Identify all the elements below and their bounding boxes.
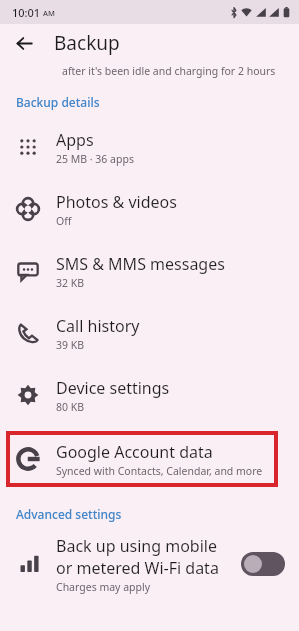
- button[interactable]: Back up using mobile or metered Wi-Fi da…: [241, 552, 285, 576]
- staticText: Advanced settings: [16, 506, 122, 522]
- staticText: or metered Wi-Fi data: [56, 557, 219, 579]
- staticText: after it's been idle and charging for 2 …: [62, 64, 276, 78]
- staticText: Off: [56, 214, 72, 228]
- staticText: Synced with Contacts, Calendar, and more: [56, 464, 263, 478]
- staticText: Apps: [56, 129, 94, 151]
- staticText: Backup: [54, 30, 120, 56]
- staticText: Call history: [56, 315, 140, 337]
- staticText: Photos & videos: [56, 191, 177, 213]
- staticText: 10:01: [12, 5, 41, 20]
- staticText: AM: [43, 8, 55, 18]
- button[interactable]: Photos & videos: [0, 178, 299, 240]
- staticText: 39 KB: [56, 338, 85, 352]
- button[interactable]: SMS & MMS messages: [0, 240, 299, 302]
- button[interactable]: Device settings: [0, 364, 299, 426]
- staticText: 25 MB · 36 apps: [56, 152, 134, 166]
- button[interactable]: Back up using mobile: [0, 526, 299, 602]
- button[interactable]: Apps: [0, 116, 299, 178]
- staticText: Charges may apply: [56, 580, 151, 594]
- button[interactable]: Back: [10, 29, 38, 57]
- staticText: 32 KB: [56, 276, 85, 290]
- button[interactable]: Google Account data: [0, 426, 299, 492]
- staticText: SMS & MMS messages: [56, 253, 225, 275]
- staticText: Backup details: [16, 94, 100, 110]
- staticText: Back up using mobile: [56, 535, 217, 557]
- button[interactable]: Call history: [0, 302, 299, 364]
- staticText: Device settings: [56, 377, 170, 399]
- staticText: 80 KB: [56, 400, 85, 414]
- staticText: Google Account data: [56, 441, 213, 463]
